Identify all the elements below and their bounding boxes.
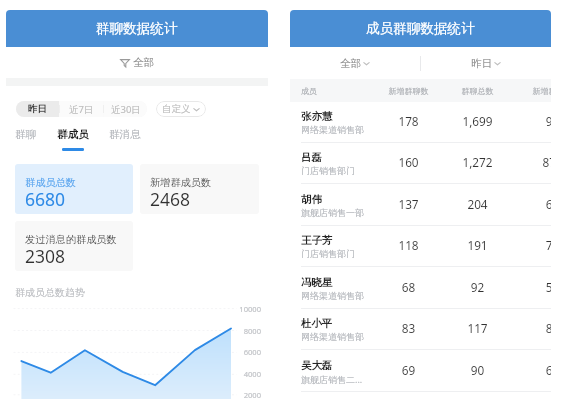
button[interactable]: 胡伟 xyxy=(290,185,551,226)
staticText: 胡伟 xyxy=(301,193,322,206)
staticText: 近7日 xyxy=(69,103,94,116)
button[interactable]: 发过消息的群成员数 xyxy=(15,221,133,271)
staticText: 群聊 xyxy=(15,128,37,141)
button[interactable]: 全部 xyxy=(290,47,420,79)
staticText: 62 xyxy=(518,196,551,212)
staticText: 成员 xyxy=(301,86,317,96)
staticText: 网络渠道销售部 xyxy=(301,290,364,301)
staticText: 网络渠道销售部 xyxy=(301,124,364,135)
staticText: 4000 xyxy=(232,369,261,379)
button[interactable]: 吴大磊 xyxy=(290,351,551,392)
staticText: 群成员总数 xyxy=(25,176,76,189)
staticText: 178 xyxy=(374,113,443,129)
staticText: 90 xyxy=(443,362,512,378)
button[interactable]: 群成员总数 xyxy=(15,164,133,214)
staticText: 吕磊 xyxy=(301,151,322,164)
staticText: 吴大磊 xyxy=(301,359,333,372)
button[interactable]: 王子芳 xyxy=(290,226,551,267)
staticText: 93 xyxy=(518,113,551,129)
button[interactable]: 全部 xyxy=(6,47,268,78)
staticText: 冯晓星 xyxy=(301,276,333,289)
button[interactable]: 群消息 xyxy=(109,128,141,151)
staticText: 旗舰店销售一部 xyxy=(301,207,364,218)
staticText: 117 xyxy=(443,320,512,336)
staticText: 10000 xyxy=(232,304,261,314)
staticText: 门店销售部门 xyxy=(301,165,355,176)
staticText: 8000 xyxy=(232,326,261,336)
staticText: 1,272 xyxy=(443,154,512,170)
staticText: 成员群聊数据统计 xyxy=(366,20,475,37)
button[interactable]: 自定义 xyxy=(156,101,206,117)
staticText: 全部 xyxy=(133,56,154,69)
staticText: 门店销售部门 xyxy=(301,248,355,259)
staticText: 群聊总数 xyxy=(443,86,512,96)
staticText: 61 xyxy=(518,362,551,378)
staticText: 92 xyxy=(443,279,512,295)
staticText: 874 xyxy=(518,154,551,170)
button[interactable]: 群聊 xyxy=(15,128,37,151)
staticText: 张亦慧 xyxy=(301,110,333,123)
staticText: 旗舰店销售二... xyxy=(301,373,363,385)
staticText: 191 xyxy=(443,237,512,253)
staticText: 杜小平 xyxy=(301,317,333,330)
button[interactable]: 吕磊 xyxy=(290,143,551,184)
staticText: 群聊数据统计 xyxy=(96,20,178,37)
staticText: 137 xyxy=(374,196,443,212)
staticText: 新增群聊数 xyxy=(374,86,443,96)
staticText: 74 xyxy=(518,237,551,253)
staticText: 2308 xyxy=(25,244,66,268)
staticText: 群成员总数趋势 xyxy=(15,286,85,299)
staticText: 204 xyxy=(443,196,512,212)
staticText: 昨日 xyxy=(28,103,47,115)
staticText: 发过消息的群成员数 xyxy=(25,233,117,246)
staticText: 王子芳 xyxy=(301,234,333,247)
staticText: 新增群成员数 xyxy=(150,176,212,189)
staticText: 6000 xyxy=(232,347,261,357)
staticText: 自定义 xyxy=(162,103,191,115)
staticText: 83 xyxy=(374,320,443,336)
staticText: 160 xyxy=(374,154,443,170)
button[interactable]: 新增群成员数 xyxy=(140,164,259,214)
button[interactable]: 冯晓星 xyxy=(290,268,551,309)
button[interactable]: 昨日 xyxy=(421,47,551,79)
staticText: 2468 xyxy=(150,187,191,211)
staticText: 全部 xyxy=(340,57,361,70)
staticText: 69 xyxy=(374,362,443,378)
staticText: 68 xyxy=(374,279,443,295)
staticText: 6680 xyxy=(25,187,66,211)
staticText: 网络渠道销售部 xyxy=(301,331,364,342)
staticText: 群消息 xyxy=(109,128,141,141)
staticText: 2000 xyxy=(232,390,261,399)
staticText: 昨日 xyxy=(471,57,492,70)
button[interactable]: 杜小平 xyxy=(290,309,551,350)
staticText: 1,699 xyxy=(443,113,512,129)
staticText: 118 xyxy=(374,237,443,253)
button[interactable]: 群成员 xyxy=(57,128,89,151)
button[interactable]: 近30日 xyxy=(104,101,147,117)
staticText: 群成员 xyxy=(57,128,89,141)
staticText: 53 xyxy=(518,279,551,295)
button[interactable]: 昨日 xyxy=(16,101,59,117)
staticText: 新增群聊数 xyxy=(518,86,551,96)
staticText: 81 xyxy=(518,320,551,336)
button[interactable]: 张亦慧 xyxy=(290,102,551,143)
staticText: 近30日 xyxy=(111,103,141,116)
button[interactable]: 近7日 xyxy=(60,101,103,117)
